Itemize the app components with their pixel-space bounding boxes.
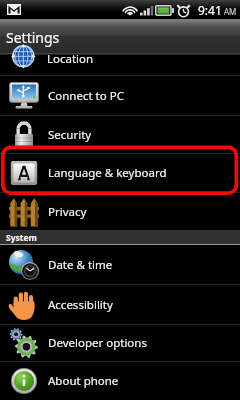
button[interactable]: Date & time [0, 245, 240, 284]
staticText: Developer options [48, 335, 147, 351]
button[interactable]: Location [0, 55, 240, 75]
button[interactable]: About phone [0, 362, 240, 400]
staticText: Settings [6, 28, 60, 47]
staticText: About phone [48, 373, 119, 389]
staticText: Security [48, 127, 92, 143]
button[interactable]: Connect to PC [0, 76, 240, 115]
staticText: Date & time [48, 257, 113, 273]
staticText: AM [224, 6, 237, 17]
button[interactable]: Developer options [0, 325, 240, 361]
other: Highlight [0, 0, 240, 400]
staticText: Location [47, 51, 94, 67]
staticText: System [6, 232, 37, 244]
button[interactable]: Accessibility [0, 285, 240, 324]
staticText: 9:41 [198, 2, 222, 18]
staticText: Accessibility [48, 297, 113, 313]
staticText: Privacy [48, 204, 87, 220]
staticText: Connect to PC [48, 88, 124, 104]
staticText: Language & keyboard [48, 165, 167, 181]
button[interactable]: Security [0, 116, 240, 153]
button[interactable]: Language & keyboard [0, 154, 240, 192]
button[interactable]: Privacy [0, 193, 240, 230]
